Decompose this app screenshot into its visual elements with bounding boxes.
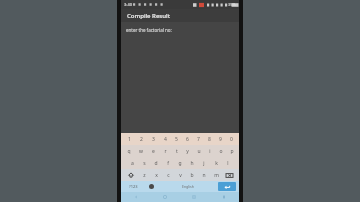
button[interactable]: v [174, 169, 186, 181]
button[interactable]: g [174, 157, 186, 169]
button[interactable]: Compile Result [121, 9, 239, 22]
staticText: e [152, 148, 155, 155]
staticText: ?123 [129, 184, 138, 189]
staticText: 9 [219, 136, 222, 143]
button[interactable]: t [171, 145, 182, 157]
button[interactable]: c [162, 169, 174, 181]
button[interactable]: m [210, 169, 222, 181]
button[interactable]: 2 [135, 133, 147, 145]
button[interactable]: u [193, 145, 204, 157]
button[interactable]: Shift [123, 169, 138, 181]
button[interactable]: 9 [215, 133, 226, 145]
staticText: 1 [128, 136, 131, 143]
staticText: enter the factorial no: [126, 27, 172, 33]
staticText: n [202, 172, 206, 179]
button[interactable]: f [162, 157, 174, 169]
staticText: g [178, 160, 182, 167]
staticText: k [215, 160, 218, 167]
staticText: z [143, 172, 146, 179]
button[interactable]: x [150, 169, 162, 181]
button[interactable]: n [198, 169, 210, 181]
staticText: 6 [186, 136, 189, 143]
staticText: p [230, 148, 234, 155]
staticText: 3:40 [124, 2, 132, 7]
staticText: j [203, 160, 205, 167]
button[interactable]: y [182, 145, 193, 157]
staticText: 5 [175, 136, 178, 143]
staticText: l [227, 160, 229, 167]
staticText: 8 [208, 136, 211, 143]
button[interactable]: j [198, 157, 210, 169]
staticText: a [131, 160, 134, 167]
button[interactable]: 8 [204, 133, 215, 145]
staticText: Compile Result [127, 12, 170, 20]
staticText: 3 [152, 136, 155, 143]
staticText: c [167, 172, 170, 179]
button[interactable]: 0 [226, 133, 237, 145]
staticText: u [197, 148, 201, 155]
button[interactable]: z [138, 169, 150, 181]
button[interactable]: 5 [171, 133, 182, 145]
button[interactable]: 7 [193, 133, 204, 145]
button[interactable]: s [138, 157, 150, 169]
button[interactable]: o [215, 145, 226, 157]
staticText: w [139, 148, 143, 155]
staticText: i [209, 148, 211, 155]
staticText: 4 [164, 136, 167, 143]
button[interactable]: English [159, 181, 217, 192]
staticText: y [186, 148, 189, 155]
button[interactable]: 6 [182, 133, 193, 145]
staticText: d [154, 160, 158, 167]
staticText: s [143, 160, 146, 167]
button[interactable]: Home [150, 192, 179, 202]
staticText: 35% [228, 2, 236, 7]
button[interactable]: w [135, 145, 147, 157]
button[interactable]: ?123 [123, 181, 144, 192]
staticText: 7 [197, 136, 200, 143]
button[interactable]: h [186, 157, 198, 169]
button[interactable]: b [186, 169, 198, 181]
button[interactable]: r [159, 145, 171, 157]
staticText: o [219, 148, 223, 155]
staticText: q [127, 148, 131, 155]
staticText: English [182, 184, 194, 189]
button[interactable]: Change language [144, 181, 159, 192]
staticText: r [164, 148, 167, 155]
button[interactable]: 3 [147, 133, 159, 145]
staticText: m [214, 172, 219, 179]
button[interactable]: q [123, 145, 135, 157]
button[interactable]: Backspace [222, 169, 237, 181]
button[interactable]: a [126, 157, 138, 169]
button[interactable]: d [150, 157, 162, 169]
button[interactable]: Keyboard [209, 192, 239, 202]
button[interactable]: 4 [159, 133, 171, 145]
staticText: t [176, 148, 178, 155]
staticText: v [179, 172, 182, 179]
button[interactable]: 1 [123, 133, 135, 145]
button[interactable]: e [147, 145, 159, 157]
staticText: b [190, 172, 194, 179]
staticText: h [190, 160, 194, 167]
button[interactable]: Enter [218, 182, 236, 191]
button[interactable]: p [226, 145, 237, 157]
staticText: 2 [140, 136, 143, 143]
button[interactable]: l [222, 157, 234, 169]
staticText: f [167, 160, 169, 167]
staticText: x [155, 172, 158, 179]
staticText: 0 [230, 136, 233, 143]
button[interactable]: k [210, 157, 222, 169]
button[interactable]: Recents [179, 192, 209, 202]
button[interactable]: i [204, 145, 215, 157]
